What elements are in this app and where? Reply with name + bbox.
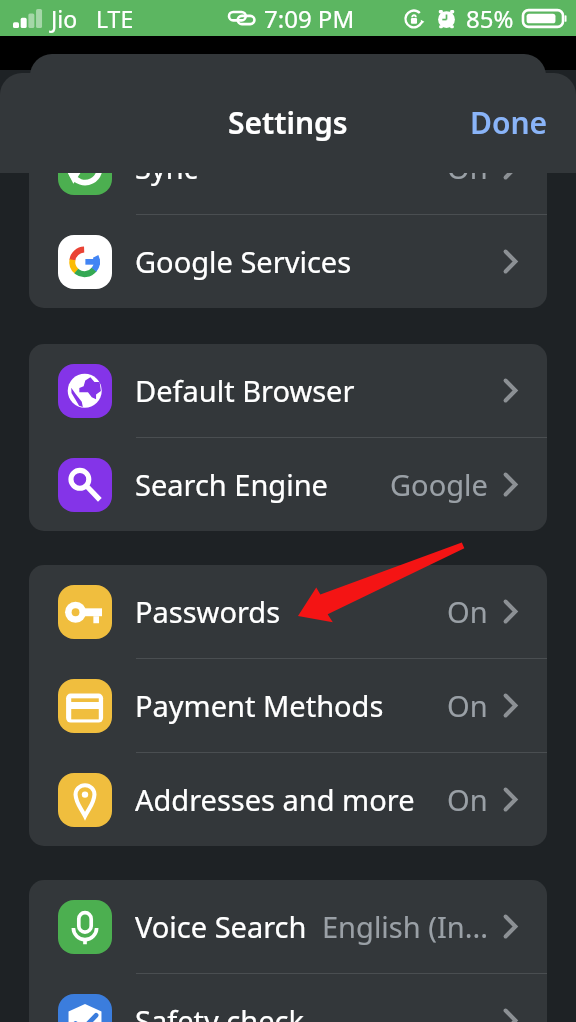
button[interactable]: Default Browser <box>29 344 547 437</box>
staticText: Voice Search <box>135 907 307 946</box>
staticText: Default Browser <box>135 371 355 410</box>
staticText: Safety check <box>135 1001 304 1022</box>
button[interactable]: Safety check <box>29 974 547 1022</box>
button[interactable]: Search Engine <box>29 438 547 531</box>
staticText: Settings <box>228 102 348 143</box>
staticText: 7:09 PM <box>264 2 355 35</box>
staticText: Jio <box>51 3 78 34</box>
button[interactable]: Payment Methods <box>29 659 547 752</box>
staticText: LTE <box>96 3 134 34</box>
button[interactable]: Google Services <box>29 215 547 308</box>
button[interactable]: Voice Search <box>29 880 547 973</box>
staticText: On <box>447 592 488 631</box>
button[interactable]: Passwords <box>29 565 547 658</box>
button[interactable]: Addresses and more <box>29 753 547 846</box>
staticText: Sync <box>135 148 198 187</box>
staticText: Google Services <box>135 242 352 281</box>
staticText: Google <box>390 465 488 504</box>
staticText: On <box>447 780 488 819</box>
staticText: Passwords <box>135 592 281 631</box>
button[interactable]: Sync <box>29 121 547 214</box>
staticText: On <box>447 148 488 187</box>
staticText: Addresses and more <box>135 780 415 819</box>
staticText: Payment Methods <box>135 686 384 725</box>
button[interactable]: Done <box>442 94 576 151</box>
staticText: 85% <box>466 2 514 35</box>
staticText: English (In... <box>322 907 488 946</box>
staticText: Search Engine <box>135 465 328 504</box>
staticText: Done <box>470 102 548 143</box>
staticText: On <box>447 686 488 725</box>
